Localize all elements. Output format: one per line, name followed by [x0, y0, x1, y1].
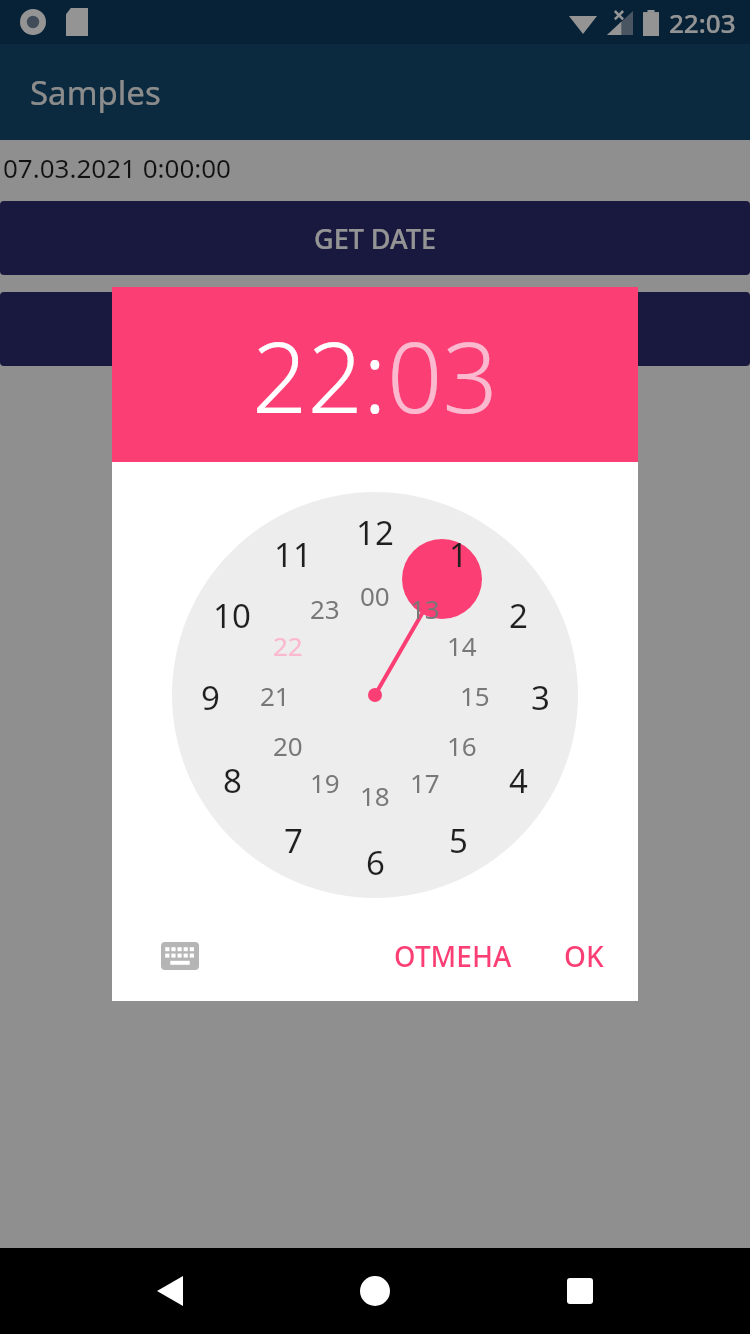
staticText: OK — [564, 937, 604, 975]
button[interactable] — [0, 292, 750, 366]
button[interactable]: 4 — [488, 758, 548, 798]
staticText: 3 — [531, 675, 550, 715]
staticText: 5 — [449, 818, 468, 858]
staticText: 9 — [201, 675, 220, 715]
button[interactable]: 2 — [488, 593, 548, 633]
button[interactable]: 7 — [263, 818, 323, 858]
button[interactable]: Recent apps — [550, 1261, 610, 1321]
button[interactable]: 10 — [202, 593, 262, 633]
button[interactable]: 21 — [245, 675, 305, 715]
button[interactable]: 00 — [345, 575, 405, 615]
staticText: 11 — [274, 532, 312, 572]
button[interactable]: 3 — [510, 675, 570, 715]
staticText: 07.03.2021 0:00:00 — [3, 150, 231, 185]
staticText: 1 — [449, 532, 468, 572]
staticText: 4 — [509, 758, 528, 798]
button[interactable]: 12 — [345, 510, 405, 550]
staticText: Samples — [30, 70, 161, 115]
staticText: : — [363, 309, 387, 441]
button[interactable]: OK — [550, 925, 618, 987]
staticText: 15 — [460, 678, 490, 713]
button[interactable]: 22 — [252, 309, 363, 441]
staticText: 21 — [260, 678, 290, 713]
button[interactable]: 9 — [180, 675, 240, 715]
button[interactable]: 15 — [445, 675, 505, 715]
button[interactable]: 19 — [295, 762, 355, 802]
button[interactable]: 17 — [395, 762, 455, 802]
staticText: 00 — [360, 578, 390, 613]
button[interactable]: Back — [140, 1261, 200, 1321]
button[interactable]: 14 — [432, 625, 492, 665]
button[interactable]: 1 — [428, 532, 488, 572]
staticText: 19 — [310, 765, 340, 800]
staticText: 22:03 — [669, 5, 736, 40]
staticText: 17 — [410, 765, 440, 800]
staticText: GET DATE — [314, 220, 437, 257]
staticText: 16 — [447, 728, 477, 763]
staticText: ОТМЕНА — [394, 937, 512, 975]
staticText: 20 — [273, 728, 303, 763]
staticText: 18 — [360, 778, 390, 813]
staticText: 2 — [509, 593, 528, 633]
button[interactable]: 22 — [258, 625, 318, 665]
button[interactable]: 5 — [428, 818, 488, 858]
staticText: 23 — [310, 591, 340, 626]
button[interactable]: 6 — [345, 840, 405, 880]
button[interactable]: 16 — [432, 725, 492, 765]
staticText: 14 — [447, 628, 477, 663]
staticText: 13 — [410, 591, 440, 626]
button[interactable]: 03 — [387, 309, 498, 441]
button[interactable]: 20 — [258, 725, 318, 765]
button[interactable]: ОТМЕНА — [380, 925, 526, 987]
button[interactable]: GET DATE — [0, 201, 750, 275]
staticText: 22 — [273, 628, 303, 663]
button[interactable]: 8 — [202, 758, 262, 798]
button[interactable]: Switch to text input mode — [156, 932, 204, 980]
staticText: 7 — [284, 818, 303, 858]
button[interactable]: 13 — [395, 588, 455, 628]
button[interactable]: Home — [345, 1261, 405, 1321]
staticText: 8 — [223, 758, 242, 798]
button[interactable]: 23 — [295, 588, 355, 628]
button[interactable]: 11 — [263, 532, 323, 572]
staticText: 10 — [213, 593, 251, 633]
staticText: 6 — [366, 840, 385, 880]
staticText: 12 — [356, 510, 394, 550]
button[interactable]: 18 — [345, 775, 405, 815]
